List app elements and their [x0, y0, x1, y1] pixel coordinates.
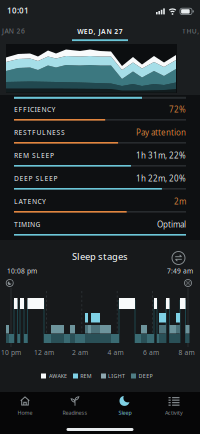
staticText: Sleep stages [72, 250, 128, 263]
staticText: 2m [174, 196, 186, 207]
button[interactable]: THU, JAN 28 [182, 24, 200, 38]
staticText: Optimal [157, 219, 186, 230]
staticText: 12 am [34, 348, 54, 357]
staticText: EFFICIENCY [14, 105, 55, 114]
staticText: 4 am [107, 348, 123, 357]
staticText: Readiness [62, 409, 87, 416]
staticText: Sleep [118, 409, 131, 416]
button[interactable]: TIMING [0, 0, 200, 434]
staticText: 1h 22m, 20% [136, 173, 186, 184]
staticText: LATENCY [14, 197, 46, 206]
staticText: REM SLEEP [14, 151, 54, 160]
staticText: 7:49 am [167, 267, 193, 275]
staticText: LIGHT [108, 372, 125, 380]
button[interactable]: REM SLEEP [0, 0, 200, 434]
button[interactable] [172, 251, 185, 264]
staticText: 2 am [72, 348, 88, 357]
staticText: 72% [169, 104, 186, 115]
button[interactable]: RESTFULNESS [0, 0, 200, 434]
staticText: Activity [165, 409, 183, 416]
staticText: AWAKE [49, 372, 67, 380]
button[interactable]: EFFICIENCY [0, 0, 200, 434]
staticText: Home [17, 409, 32, 416]
staticText: RESTFULNESS [14, 128, 65, 137]
staticText: WED, JAN 27 [77, 27, 123, 36]
button[interactable]: Readiness [53, 393, 97, 419]
staticText: 10:08 pm [7, 267, 37, 275]
staticText: 10 pm [1, 348, 21, 357]
staticText: 1h 31m, 22% [136, 150, 186, 161]
staticText: 8 am [178, 348, 194, 357]
staticText: DEEP [139, 372, 152, 380]
staticText: 10:01 [7, 5, 29, 16]
button[interactable]: DEEP SLEEP [0, 0, 200, 434]
button[interactable]: Sleep [103, 393, 147, 419]
staticText: JAN 26 [2, 27, 25, 35]
staticText: Pay attention [136, 127, 186, 138]
button[interactable]: JAN 26 [2, 24, 32, 38]
staticText: THU, JAN 28 [182, 27, 200, 35]
button[interactable]: WED, JAN 27 [72, 27, 128, 41]
staticText: DEEP SLEEP [14, 174, 57, 183]
button[interactable]: Activity [152, 393, 196, 419]
staticText: 6 am [143, 348, 159, 357]
button[interactable]: LATENCY [0, 0, 200, 434]
button[interactable]: Home [3, 393, 47, 419]
staticText: TIMING [14, 220, 40, 229]
staticText: REM [80, 372, 92, 380]
